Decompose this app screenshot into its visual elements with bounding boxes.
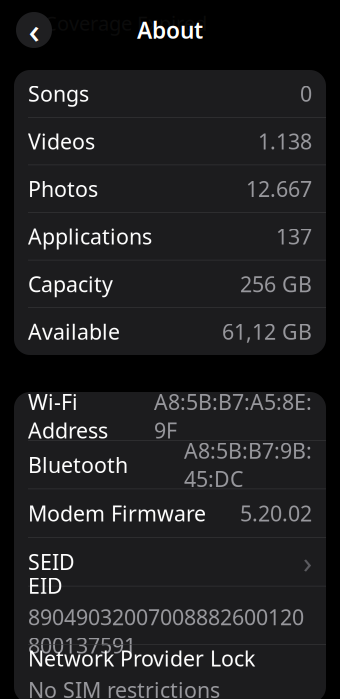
staticText: 0 [300, 79, 312, 108]
staticText: About [137, 15, 203, 45]
staticText: 1.138 [258, 127, 312, 155]
staticText: 61,12 GB [222, 317, 312, 346]
button[interactable]: Wi-Fi Address [14, 392, 326, 440]
button[interactable]: EID [14, 586, 326, 644]
button[interactable]: Network Provider Lock [14, 645, 326, 699]
staticText: Capacity [28, 270, 113, 298]
button[interactable]: Applications [14, 213, 326, 260]
staticText: 89049032007008882600120800137591 [28, 603, 304, 659]
staticText: 256 GB [240, 270, 312, 298]
staticText: SEID [28, 548, 75, 576]
staticText: A8:5B:B7:A5:8E:9F [154, 388, 312, 444]
staticText: 5.20.02 [240, 499, 312, 527]
button[interactable]: Videos [14, 118, 326, 165]
staticText: Photos [28, 174, 98, 203]
staticText: A8:5B:B7:9B:45:DC [184, 436, 312, 493]
button[interactable]: Modem Firmware [14, 489, 326, 537]
staticText: Videos [28, 127, 95, 155]
button[interactable]: SEID [14, 538, 326, 586]
staticText: Applications [28, 222, 152, 250]
staticText: Modem Firmware [28, 499, 206, 527]
staticText: EID [28, 571, 63, 600]
button[interactable]: Songs [14, 70, 326, 117]
button[interactable]: Available [14, 308, 326, 355]
staticText: Bluetooth [28, 450, 128, 479]
button[interactable]: Back [16, 12, 52, 48]
staticText: Wi-Fi Address [28, 388, 108, 444]
button[interactable]: Photos [14, 165, 326, 212]
staticText: ‹ [28, 7, 39, 53]
button[interactable]: Bluetooth [14, 441, 326, 489]
button[interactable]: Capacity [14, 260, 326, 307]
staticText: Network Provider Lock [28, 644, 255, 672]
staticText: Songs [28, 79, 89, 108]
staticText: › [303, 542, 312, 581]
staticText: 137 [276, 222, 312, 250]
staticText: Available [28, 317, 120, 346]
staticText: 12.667 [246, 174, 312, 203]
staticText: No SIM restrictions [28, 675, 220, 699]
staticText: Coverage Expired [44, 10, 207, 36]
